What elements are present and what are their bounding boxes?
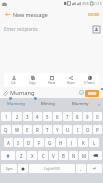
staticText: 6 xyxy=(56,114,59,120)
button[interactable]: 7 xyxy=(63,112,72,121)
button[interactable]: H xyxy=(56,138,66,147)
staticText: A xyxy=(7,140,10,146)
button[interactable]: , xyxy=(76,164,86,173)
button[interactable]: V xyxy=(49,151,58,160)
staticText: Mining xyxy=(41,101,55,107)
button[interactable]: J xyxy=(67,138,77,147)
button[interactable]: F xyxy=(34,138,44,147)
button[interactable]: Mumang xyxy=(0,98,32,110)
button[interactable]: 0 xyxy=(93,112,102,121)
staticText: 8 xyxy=(76,114,79,120)
button[interactable]: T xyxy=(43,125,52,134)
staticText: Paste xyxy=(48,81,56,85)
staticText: SEND xyxy=(88,92,97,96)
button[interactable]: 5 xyxy=(43,112,52,121)
staticText: K xyxy=(82,140,85,146)
button[interactable]: G xyxy=(45,138,55,147)
button[interactable]: Back xyxy=(0,7,14,21)
button[interactable]: W xyxy=(12,125,22,134)
button[interactable]: 3 xyxy=(23,112,32,121)
staticText: 1 xyxy=(5,114,8,120)
button[interactable]: Enter xyxy=(87,164,102,173)
staticText: Enter recipients xyxy=(4,26,38,32)
staticText: Y xyxy=(56,127,59,133)
button[interactable]: O xyxy=(83,125,92,134)
button[interactable]: B xyxy=(59,151,68,160)
button[interactable]: 4 xyxy=(33,112,42,121)
button[interactable]: S Transl xyxy=(80,73,99,87)
button[interactable]: Q xyxy=(1,125,11,134)
staticText: 2 xyxy=(16,114,19,120)
button[interactable]: Sym xyxy=(1,164,17,173)
staticText: C xyxy=(42,153,45,159)
staticText: H xyxy=(59,140,63,146)
staticText: J xyxy=(71,140,73,146)
staticText: Z xyxy=(20,153,23,159)
staticText: 7 xyxy=(66,114,69,120)
staticText: Sym xyxy=(6,167,13,171)
staticText: 35% xyxy=(82,1,89,6)
button[interactable]: 1 xyxy=(1,112,11,121)
button[interactable]: I xyxy=(73,125,82,134)
button[interactable]: U xyxy=(63,125,72,134)
staticText: F xyxy=(38,140,41,146)
staticText: Mummy xyxy=(72,101,89,107)
button[interactable]: N xyxy=(69,151,78,160)
staticText: S Transl xyxy=(84,81,95,85)
staticText: M xyxy=(82,153,86,159)
staticText: P xyxy=(96,127,99,133)
staticText: English(UK) xyxy=(44,167,61,171)
staticText: X xyxy=(31,153,34,159)
button[interactable]: SEND xyxy=(85,90,99,97)
button[interactable]: MORE xyxy=(85,9,103,20)
staticText: Mumang xyxy=(7,101,25,107)
button[interactable]: More suggestions xyxy=(96,98,103,110)
staticText: Mumang xyxy=(10,89,35,97)
staticText: 5 xyxy=(46,114,49,120)
button[interactable]: Paste xyxy=(42,73,61,87)
button[interactable]: P xyxy=(93,125,102,134)
button[interactable]: Mining xyxy=(32,98,64,110)
button[interactable]: C xyxy=(38,151,48,160)
button[interactable]: A xyxy=(4,138,13,147)
staticText: N xyxy=(72,153,76,159)
button[interactable]: E xyxy=(23,125,32,134)
staticText: 3 xyxy=(26,114,29,120)
button[interactable]: Emoji xyxy=(77,88,85,96)
button[interactable]: K xyxy=(78,138,88,147)
button[interactable]: 8 xyxy=(73,112,82,121)
button[interactable]: 2 xyxy=(12,112,22,121)
staticText: > xyxy=(98,102,101,107)
button[interactable]: L xyxy=(89,138,99,147)
staticText: T xyxy=(46,127,49,133)
staticText: U xyxy=(66,127,70,133)
staticText: Cut xyxy=(11,81,16,85)
button[interactable]: Contacts xyxy=(92,25,101,34)
staticText: G xyxy=(48,140,52,146)
staticText: 0 xyxy=(96,114,99,120)
button[interactable]: R xyxy=(33,125,42,134)
button[interactable]: Share xyxy=(61,73,80,87)
staticText: O xyxy=(86,127,90,133)
button[interactable]: S xyxy=(14,138,23,147)
button[interactable]: X xyxy=(27,151,37,160)
button[interactable]: English(UK) xyxy=(29,164,75,173)
staticText: 21:15 xyxy=(93,1,102,6)
button[interactable]: Copy xyxy=(23,73,42,87)
button[interactable]: D xyxy=(24,138,33,147)
button[interactable]: Mummy xyxy=(64,98,96,110)
button[interactable]: Backspace xyxy=(89,151,102,160)
button[interactable]: Attach xyxy=(0,88,9,97)
button[interactable]: Shift xyxy=(1,151,15,160)
button[interactable]: Y xyxy=(53,125,62,134)
button[interactable]: Settings xyxy=(18,164,28,173)
button[interactable]: M xyxy=(79,151,88,160)
button[interactable]: 6 xyxy=(53,112,62,121)
staticText: Copy xyxy=(29,81,36,85)
button[interactable]: 9 xyxy=(83,112,92,121)
staticText: , xyxy=(80,166,82,172)
staticText: D xyxy=(27,140,31,146)
button[interactable]: Cut xyxy=(4,73,23,87)
staticText: Share xyxy=(67,81,75,85)
button[interactable]: Z xyxy=(16,151,26,160)
